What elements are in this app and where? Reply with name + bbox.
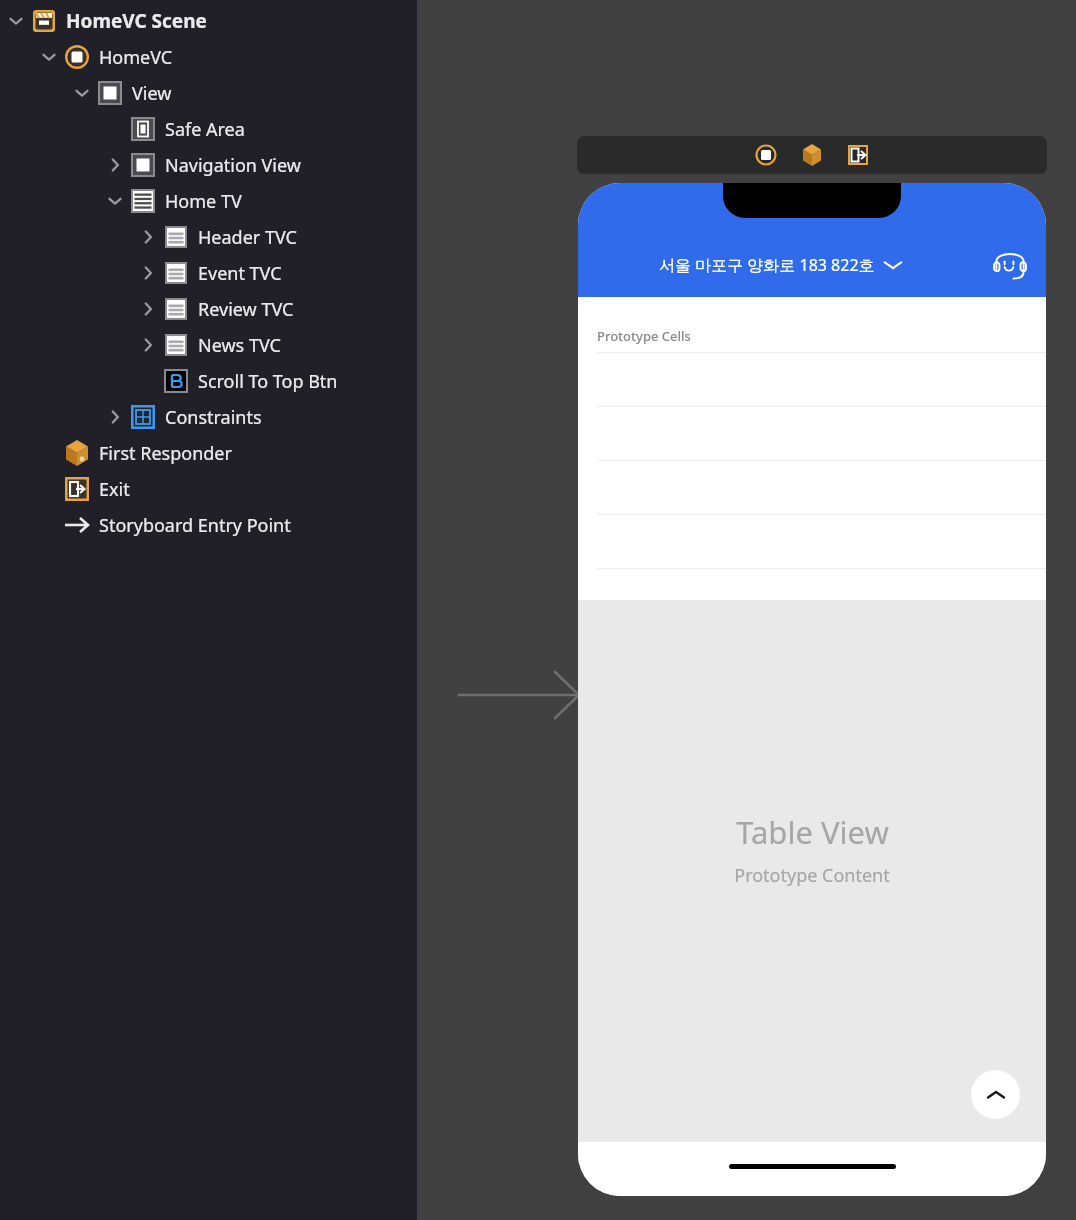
button[interactable]: Constraints <box>0 399 417 435</box>
button[interactable]: First responder <box>797 140 827 170</box>
staticText: 서울 마포구 양화로 183 822호 <box>659 254 875 276</box>
staticText: Table View <box>736 811 889 853</box>
staticText: Home TV <box>165 189 242 214</box>
button[interactable]: Exit <box>0 471 417 507</box>
staticText: HomeVC Scene <box>66 8 207 34</box>
staticText: First Responder <box>99 441 232 466</box>
button[interactable]: 서울 마포구 양화로 183 822호 <box>579 254 982 276</box>
button[interactable]: Exit <box>843 140 873 170</box>
staticText: Exit <box>99 477 130 502</box>
button[interactable]: Storyboard Entry Point <box>0 507 417 543</box>
button[interactable]: Event TVC <box>0 255 417 291</box>
staticText: Event TVC <box>198 261 282 286</box>
button[interactable]: HomeVC <box>0 39 417 75</box>
staticText: Safe Area <box>165 117 245 142</box>
staticText: Storyboard Entry Point <box>99 513 291 538</box>
staticText: Constraints <box>165 405 262 430</box>
button[interactable]: Review TVC <box>0 291 417 327</box>
staticText: View <box>132 81 172 106</box>
staticText: Prototype Content <box>734 863 890 888</box>
staticText: Navigation View <box>165 153 301 178</box>
staticText: Review TVC <box>198 297 294 322</box>
staticText: HomeVC <box>99 45 173 70</box>
button[interactable]: View <box>0 75 417 111</box>
staticText: Header TVC <box>198 225 297 250</box>
button[interactable]: News TVC <box>0 327 417 363</box>
button[interactable]: Header TVC <box>0 219 417 255</box>
staticText: Prototype Cells <box>597 327 691 345</box>
button[interactable]: Customer service <box>982 237 1038 293</box>
staticText: News TVC <box>198 333 281 358</box>
button[interactable]: Scroll to top <box>971 1070 1020 1119</box>
button[interactable]: Scroll To Top Btn <box>0 363 417 399</box>
button[interactable]: First Responder <box>0 435 417 471</box>
button[interactable]: Navigation View <box>0 147 417 183</box>
button[interactable]: HomeVC Scene <box>0 3 417 39</box>
button[interactable]: Home TV <box>0 183 417 219</box>
button[interactable]: Safe Area <box>0 111 417 147</box>
button[interactable]: View controller <box>751 140 781 170</box>
staticText: Scroll To Top Btn <box>198 369 338 394</box>
